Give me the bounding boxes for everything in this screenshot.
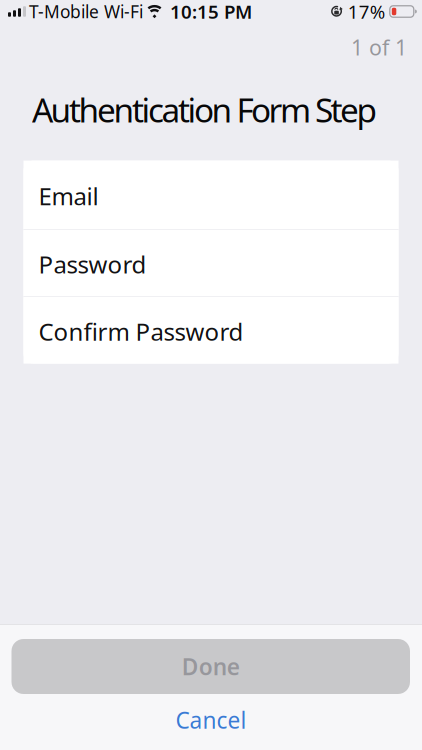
staticText: 17%: [348, 0, 386, 24]
button[interactable]: Confirm Password: [23, 297, 398, 364]
button[interactable]: Email: [23, 161, 398, 229]
staticText: Email: [38, 180, 98, 212]
button[interactable]: Password: [23, 230, 398, 296]
button[interactable]: Done: [11, 639, 410, 694]
staticText: 1 of 1: [351, 33, 407, 61]
button[interactable]: Cancel: [155, 701, 266, 739]
staticText: Password: [38, 248, 146, 280]
staticText: Confirm Password: [38, 315, 243, 347]
staticText: Cancel: [175, 705, 246, 735]
staticText: T-Mobile Wi-Fi: [29, 0, 143, 23]
staticText: Done: [182, 651, 240, 681]
staticText: Authentication Form Step: [32, 87, 377, 132]
staticText: 10:15 PM: [170, 0, 252, 24]
